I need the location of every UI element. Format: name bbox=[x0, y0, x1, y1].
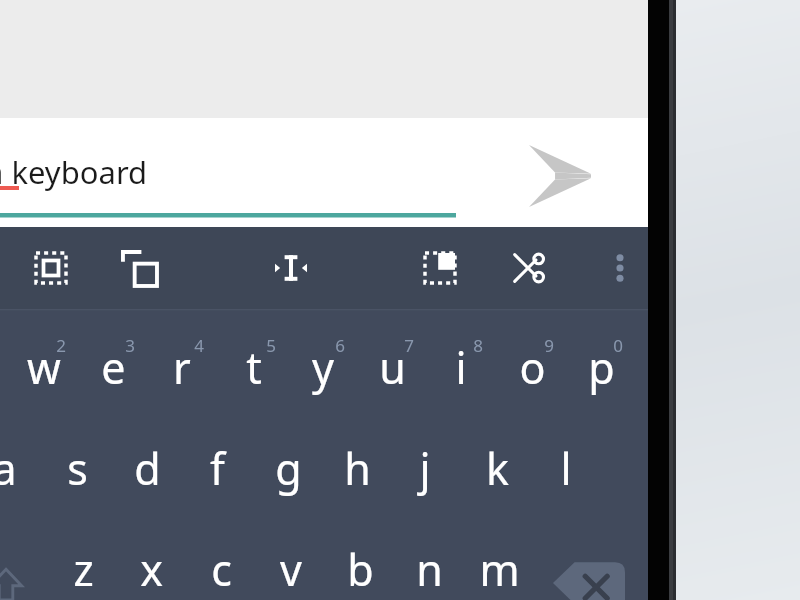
button[interactable]: h bbox=[301, 425, 413, 511]
staticText: 5 bbox=[266, 334, 276, 357]
staticText: z bbox=[73, 540, 94, 599]
button[interactable]: Select all bbox=[25, 242, 77, 294]
button[interactable]: 5 bbox=[249, 328, 293, 362]
button[interactable]: e bbox=[57, 324, 169, 410]
button[interactable]: 9 bbox=[527, 328, 571, 362]
button[interactable]: o bbox=[476, 324, 588, 410]
button[interactable]: y bbox=[267, 324, 379, 410]
button[interactable]: l bbox=[510, 425, 622, 511]
button[interactable]: g bbox=[232, 425, 344, 511]
staticText: h bbox=[344, 439, 371, 498]
staticText: a keyboard bbox=[0, 151, 148, 193]
button[interactable]: d bbox=[91, 425, 203, 511]
staticText: g bbox=[275, 439, 302, 498]
staticText: i bbox=[455, 338, 467, 397]
button[interactable]: 6 bbox=[318, 328, 362, 362]
staticText: c bbox=[211, 540, 232, 599]
button[interactable]: Copy bbox=[113, 242, 165, 294]
staticText: n bbox=[416, 540, 443, 599]
button[interactable]: a bbox=[0, 425, 60, 511]
button[interactable]: Cut bbox=[502, 242, 554, 294]
button[interactable]: 0 bbox=[596, 328, 640, 362]
staticText: u bbox=[379, 338, 406, 397]
button[interactable]: 2 bbox=[39, 328, 83, 362]
button[interactable]: 4 bbox=[177, 328, 221, 362]
staticText: 7 bbox=[404, 334, 414, 357]
button[interactable]: 8 bbox=[456, 328, 500, 362]
button[interactable]: z bbox=[27, 526, 139, 600]
button[interactable]: Send bbox=[520, 138, 600, 214]
button[interactable]: x bbox=[95, 526, 207, 600]
staticText: 0 bbox=[613, 334, 623, 357]
button[interactable]: i bbox=[405, 324, 517, 410]
staticText: 4 bbox=[194, 334, 204, 357]
staticText: l bbox=[560, 439, 572, 498]
button[interactable]: 3 bbox=[108, 328, 152, 362]
button[interactable]: a keyboard bbox=[0, 143, 456, 201]
button[interactable]: t bbox=[198, 324, 310, 410]
button[interactable]: 7 bbox=[387, 328, 431, 362]
staticText: m bbox=[479, 540, 520, 599]
button[interactable]: Select text bbox=[265, 242, 317, 294]
button[interactable]: Cut selection bbox=[414, 242, 466, 294]
staticText: x bbox=[140, 540, 163, 599]
button[interactable]: p bbox=[545, 324, 657, 410]
staticText: a bbox=[0, 439, 17, 498]
staticText: f bbox=[210, 439, 225, 498]
button[interactable]: n bbox=[373, 526, 485, 600]
staticText: t bbox=[246, 338, 262, 397]
staticText: w bbox=[27, 338, 61, 397]
button[interactable]: u bbox=[336, 324, 448, 410]
button[interactable]: s bbox=[21, 425, 133, 511]
button[interactable]: j bbox=[369, 425, 481, 511]
button[interactable]: More options bbox=[594, 242, 646, 294]
staticText: 6 bbox=[335, 334, 345, 357]
staticText: 8 bbox=[473, 334, 483, 357]
staticText: j bbox=[419, 439, 431, 498]
button[interactable]: f bbox=[161, 425, 273, 511]
staticText: 9 bbox=[544, 334, 554, 357]
staticText: v bbox=[280, 540, 302, 599]
staticText: d bbox=[134, 439, 161, 498]
button[interactable]: Shift bbox=[0, 557, 34, 600]
staticText: e bbox=[101, 338, 126, 397]
staticText: b bbox=[347, 540, 374, 599]
staticText: o bbox=[519, 338, 546, 397]
staticText: s bbox=[67, 439, 88, 498]
button[interactable]: b bbox=[304, 526, 416, 600]
staticText: r bbox=[173, 338, 191, 397]
button[interactable]: m bbox=[443, 526, 555, 600]
staticText: 2 bbox=[56, 334, 66, 357]
staticText: 3 bbox=[125, 334, 135, 357]
button[interactable]: k bbox=[441, 425, 553, 511]
button[interactable]: Backspace bbox=[553, 560, 625, 600]
staticText: y bbox=[312, 338, 334, 397]
button[interactable]: w bbox=[0, 324, 100, 410]
button[interactable]: r bbox=[126, 324, 238, 410]
button[interactable]: v bbox=[235, 526, 347, 600]
button[interactable]: c bbox=[165, 526, 277, 600]
staticText: p bbox=[588, 338, 615, 397]
staticText: k bbox=[486, 439, 509, 498]
